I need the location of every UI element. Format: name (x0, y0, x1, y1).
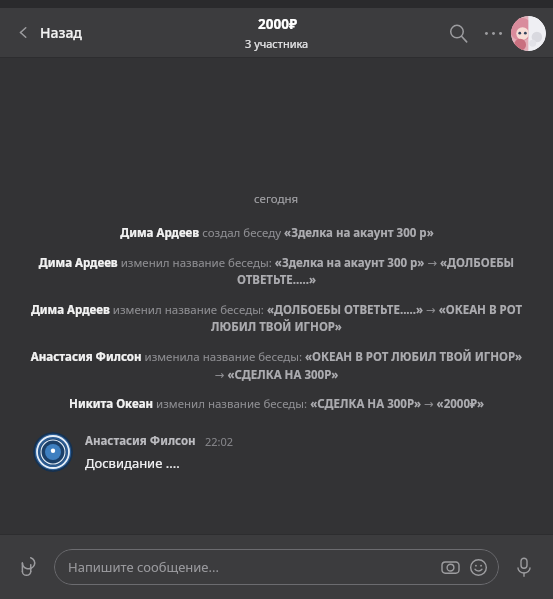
staticText: Назад (40, 23, 82, 42)
button[interactable]: Анастасия Филсон (0, 432, 553, 472)
staticText: Анастасия Филсон изменила название бесед… (26, 349, 527, 382)
staticText: Дима Ардеев изменил название беседы: «Зд… (26, 255, 527, 288)
staticText: Досвидание .... (85, 454, 180, 472)
button[interactable]: Камера (436, 553, 464, 581)
button[interactable]: Голосовое сообщение (504, 547, 544, 587)
staticText: сегодня (254, 191, 299, 207)
staticText: Дима Ардеев изменил название беседы: «ДО… (26, 302, 527, 335)
button[interactable]: Дима Ардеев изменил название беседы: «ДО… (0, 295, 553, 342)
button[interactable]: Напишите сообщение... (54, 549, 499, 585)
button[interactable]: Анастасия Филсон изменила название бесед… (0, 342, 553, 389)
button[interactable]: Дима Ардеев создал беседу «Зделка на ака… (0, 218, 553, 248)
staticText: Напишите сообщение... (68, 558, 436, 576)
staticText: 3 участника (245, 36, 309, 51)
staticText: Никита Океан изменил название беседы: «С… (69, 396, 484, 412)
button[interactable]: Эмодзи (464, 553, 492, 581)
staticText: 2000₽ (258, 15, 297, 33)
button[interactable]: Прикрепить файл (9, 547, 49, 587)
button[interactable]: 2000₽ (235, 13, 319, 53)
button[interactable]: Поиск (440, 15, 476, 51)
button[interactable]: Назад (8, 17, 90, 48)
staticText: 22:02 (205, 434, 234, 449)
button[interactable]: Дима Ардеев изменил название беседы: «Зд… (0, 248, 553, 295)
button[interactable]: Ещё (476, 16, 510, 50)
staticText: Анастасия Филсон (85, 433, 196, 449)
button[interactable]: Никита Океан изменил название беседы: «С… (0, 389, 553, 419)
button[interactable]: Профиль беседы (511, 16, 546, 51)
staticText: Дима Ардеев создал беседу «Зделка на ака… (120, 225, 434, 241)
